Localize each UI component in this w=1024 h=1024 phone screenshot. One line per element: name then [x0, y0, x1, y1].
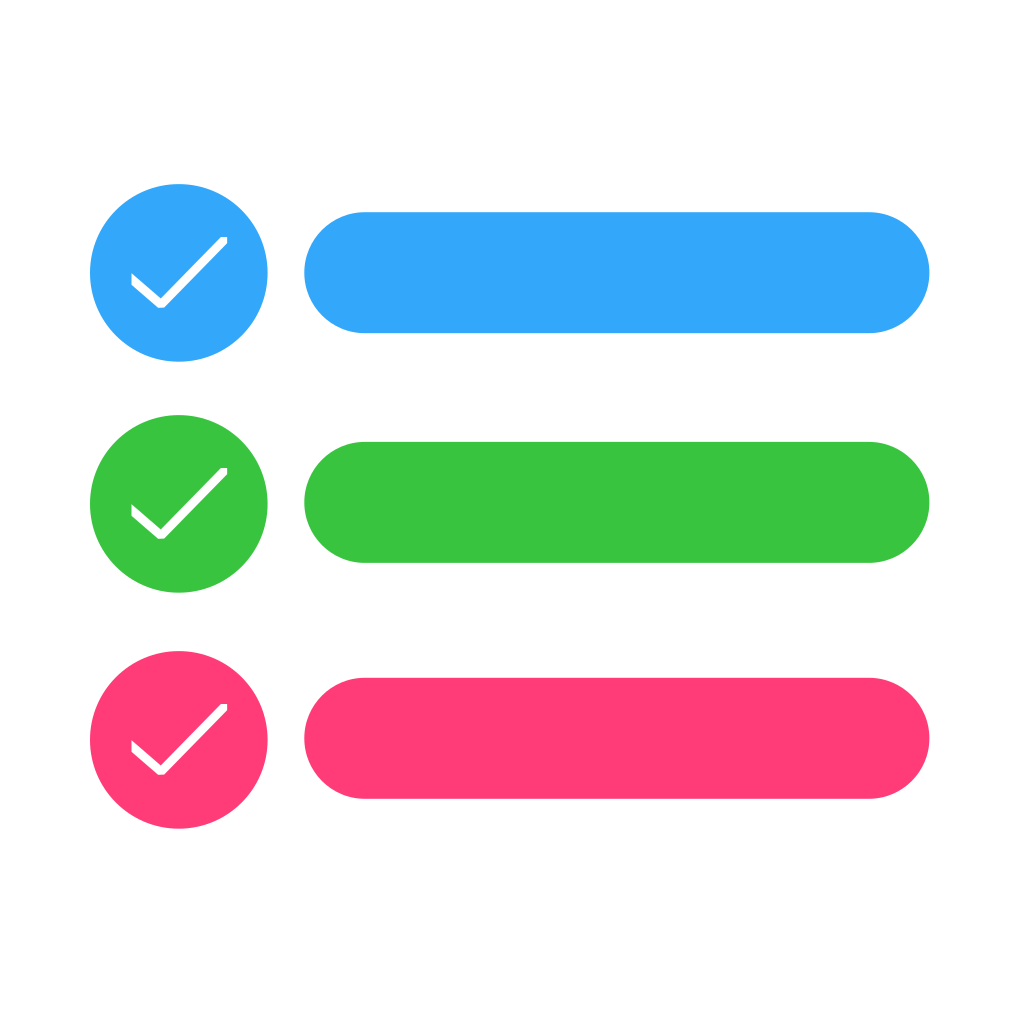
button[interactable]: Third task — [304, 678, 929, 799]
button[interactable]: Second task — [304, 442, 929, 563]
button[interactable]: First task, completed — [90, 184, 268, 362]
button[interactable]: Third task, completed — [90, 651, 268, 829]
button[interactable]: Second task, completed — [90, 415, 268, 593]
button[interactable]: First task — [304, 212, 929, 333]
